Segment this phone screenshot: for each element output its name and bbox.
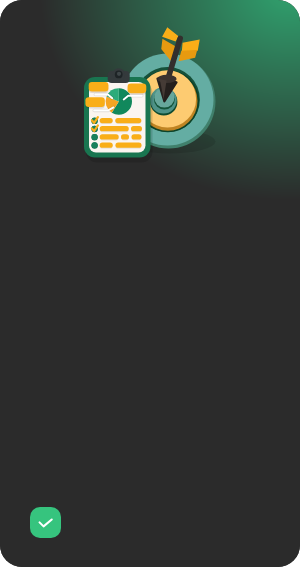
button[interactable]: Confirm <box>30 507 61 538</box>
